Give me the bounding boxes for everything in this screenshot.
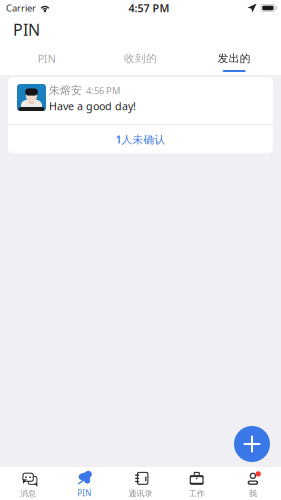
- button[interactable]: PIN: [0, 43, 94, 75]
- staticText: 消息: [20, 489, 36, 498]
- button[interactable]: 消息: [0, 467, 56, 500]
- staticText: 朱熔安: [49, 84, 82, 97]
- staticText: PIN: [38, 51, 56, 66]
- staticText: PIN: [77, 488, 91, 498]
- button[interactable]: 发出的: [187, 43, 281, 75]
- staticText: Have a good day!: [49, 99, 136, 113]
- button[interactable]: 我: [225, 467, 281, 500]
- staticText: PIN: [13, 19, 40, 40]
- button[interactable]: 工作: [169, 467, 225, 500]
- staticText: 发出的: [218, 52, 251, 65]
- button[interactable]: PIN: [56, 467, 112, 500]
- staticText: 收到的: [124, 52, 157, 65]
- button[interactable]: 1人未确认: [8, 125, 273, 153]
- staticText: 我: [249, 489, 257, 498]
- button[interactable]: 朱熔安: [8, 77, 273, 153]
- staticText: 1人未确认: [115, 132, 165, 146]
- staticText: 4:56 PM: [86, 84, 120, 97]
- staticText: 工作: [189, 489, 205, 498]
- staticText: Carrier: [6, 2, 36, 14]
- staticText: 通讯录: [128, 489, 152, 498]
- button[interactable]: 通讯录: [112, 467, 169, 500]
- button[interactable]: New PIN: [234, 426, 270, 462]
- staticText: 4:57 PM: [129, 1, 170, 15]
- button[interactable]: 收到的: [94, 43, 187, 75]
